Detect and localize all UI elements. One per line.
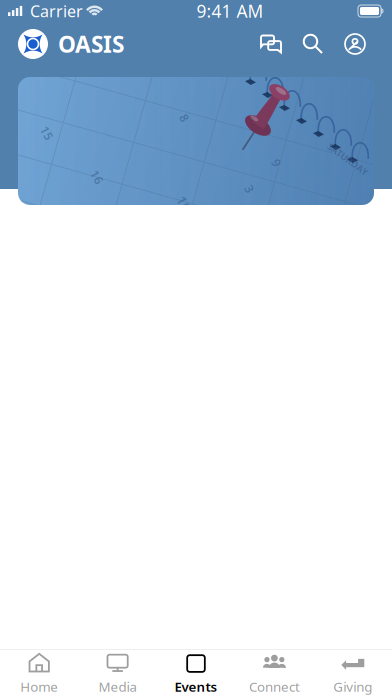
button[interactable]: Search (302, 27, 324, 61)
staticText: 15 (40, 125, 54, 141)
button[interactable]: Profile (344, 27, 366, 61)
staticText: 9:41 AM (196, 0, 263, 22)
staticText: Media (99, 678, 137, 695)
staticText: 3 (246, 181, 253, 197)
staticText: 10 (176, 195, 192, 213)
button[interactable]: Giving (314, 645, 392, 696)
button[interactable]: Messages (260, 27, 282, 61)
staticText: Events (174, 678, 217, 695)
button[interactable]: Events (157, 645, 235, 696)
staticText: Home (20, 678, 58, 695)
button[interactable]: OASIS (18, 29, 124, 59)
button[interactable]: Media (78, 645, 157, 696)
staticText: SATURDAY (324, 153, 372, 165)
staticText: 8 (181, 110, 188, 126)
staticText: 16 (90, 169, 104, 185)
staticText: 9 (273, 155, 280, 171)
staticText: Connect (249, 678, 300, 695)
button[interactable]: Home (0, 645, 78, 696)
button[interactable]: Connect (235, 645, 314, 696)
staticText: Carrier (30, 0, 83, 22)
staticText: OASIS (58, 29, 124, 59)
staticText: Giving (333, 678, 372, 695)
